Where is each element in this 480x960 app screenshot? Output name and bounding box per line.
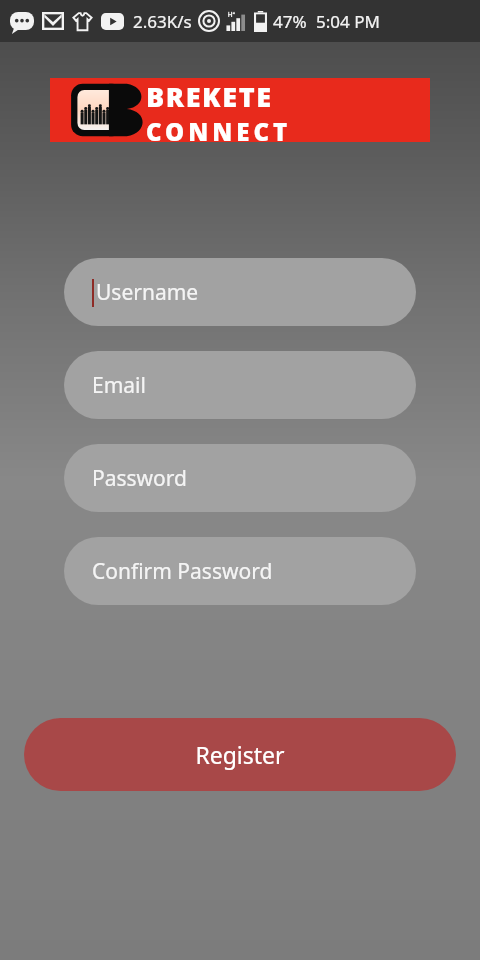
button[interactable]: Email: [64, 351, 416, 419]
staticText: Password: [92, 464, 187, 493]
staticText: BREKETE: [146, 78, 273, 115]
staticText: 5:04 PM: [316, 10, 380, 33]
staticText: Confirm Password: [92, 557, 273, 586]
staticText: Register: [195, 739, 285, 770]
staticText: CONNECT: [146, 115, 292, 142]
button[interactable]: Register: [24, 718, 456, 791]
button[interactable]: Username: [64, 258, 416, 326]
staticText: 47%: [273, 10, 307, 33]
button[interactable]: Confirm Password: [64, 537, 416, 605]
staticText: 2.63K/s: [133, 10, 192, 33]
button[interactable]: Password: [64, 444, 416, 512]
staticText: Email: [92, 371, 146, 400]
staticText: Username: [96, 278, 199, 307]
